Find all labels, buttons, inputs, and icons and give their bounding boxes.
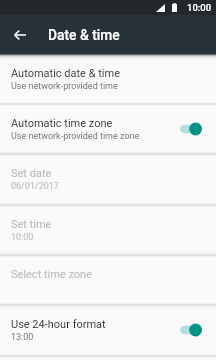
staticText: Select time zone bbox=[11, 268, 92, 281]
staticText: Use network-provided time bbox=[11, 81, 118, 92]
button[interactable]: Navigate up bbox=[8, 15, 31, 54]
staticText: 10:00 bbox=[187, 2, 212, 13]
staticText: 10:00 bbox=[11, 232, 34, 243]
button[interactable]: Automatic time zone bbox=[0, 104, 216, 154]
staticText: Set time bbox=[11, 218, 52, 231]
staticText: Use 24-hour format bbox=[11, 318, 106, 331]
button[interactable]: Automatic date & time bbox=[0, 54, 216, 104]
staticText: 06/01/2017 bbox=[11, 181, 59, 192]
button[interactable]: Set date bbox=[0, 154, 216, 204]
staticText: Automatic time zone bbox=[11, 117, 113, 130]
staticText: Use network-provided time zone bbox=[11, 131, 140, 142]
staticText: Set date bbox=[11, 167, 52, 180]
button[interactable]: Use 24-hour format bbox=[0, 305, 216, 355]
button[interactable]: Set time bbox=[0, 205, 216, 255]
staticText: Date & time bbox=[48, 27, 120, 43]
button[interactable]: Select time zone bbox=[0, 255, 216, 305]
staticText: Automatic date & time bbox=[11, 67, 121, 80]
staticText: 13:00 bbox=[11, 332, 34, 343]
